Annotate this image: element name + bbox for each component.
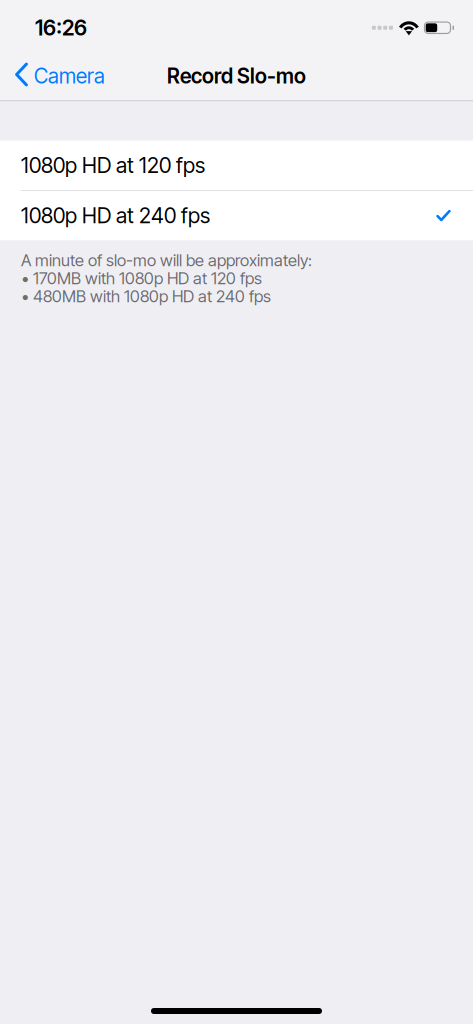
staticText: Camera <box>34 63 105 88</box>
staticText: 1080p HD at 120 fps <box>21 152 205 178</box>
button[interactable]: 1080p HD at 240 fps <box>0 191 473 240</box>
button[interactable]: 1080p HD at 120 fps <box>0 140 473 190</box>
staticText: 16:26 <box>35 15 87 41</box>
staticText: • 480MB with 1080p HD at 240 fps <box>21 286 271 306</box>
staticText: A minute of slo-mo will be approximately… <box>21 250 312 270</box>
staticText: 1080p HD at 240 fps <box>21 203 210 228</box>
staticText: Record Slo-mo <box>167 63 306 88</box>
button[interactable]: Camera <box>0 50 115 102</box>
staticText: • 170MB with 1080p HD at 120 fps <box>21 268 262 288</box>
